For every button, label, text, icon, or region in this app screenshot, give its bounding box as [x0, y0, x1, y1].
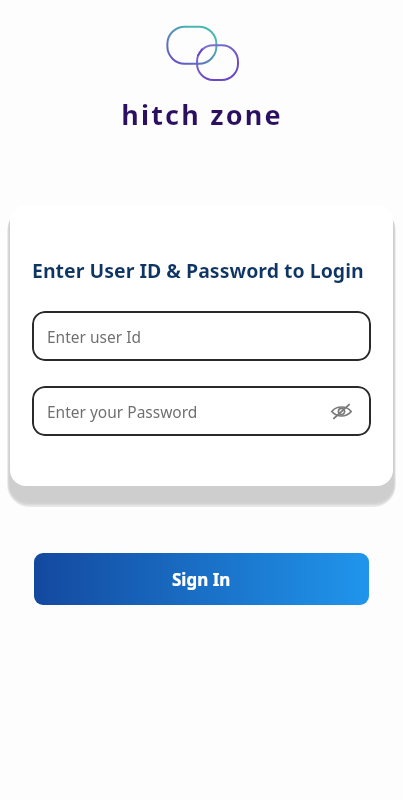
staticText: Enter your Password	[47, 401, 326, 422]
staticText: Sign In	[172, 568, 231, 591]
button[interactable]: Show password	[326, 396, 356, 426]
staticText: Enter user Id	[47, 326, 356, 347]
button[interactable]: Enter your Password	[32, 386, 371, 436]
button[interactable]: Sign In	[34, 553, 369, 605]
other: hitch zone logo	[157, 22, 247, 84]
staticText: Enter User ID & Password to Login	[32, 257, 364, 284]
staticText: hitch zone	[121, 96, 283, 133]
button[interactable]: Enter user Id	[32, 311, 371, 361]
